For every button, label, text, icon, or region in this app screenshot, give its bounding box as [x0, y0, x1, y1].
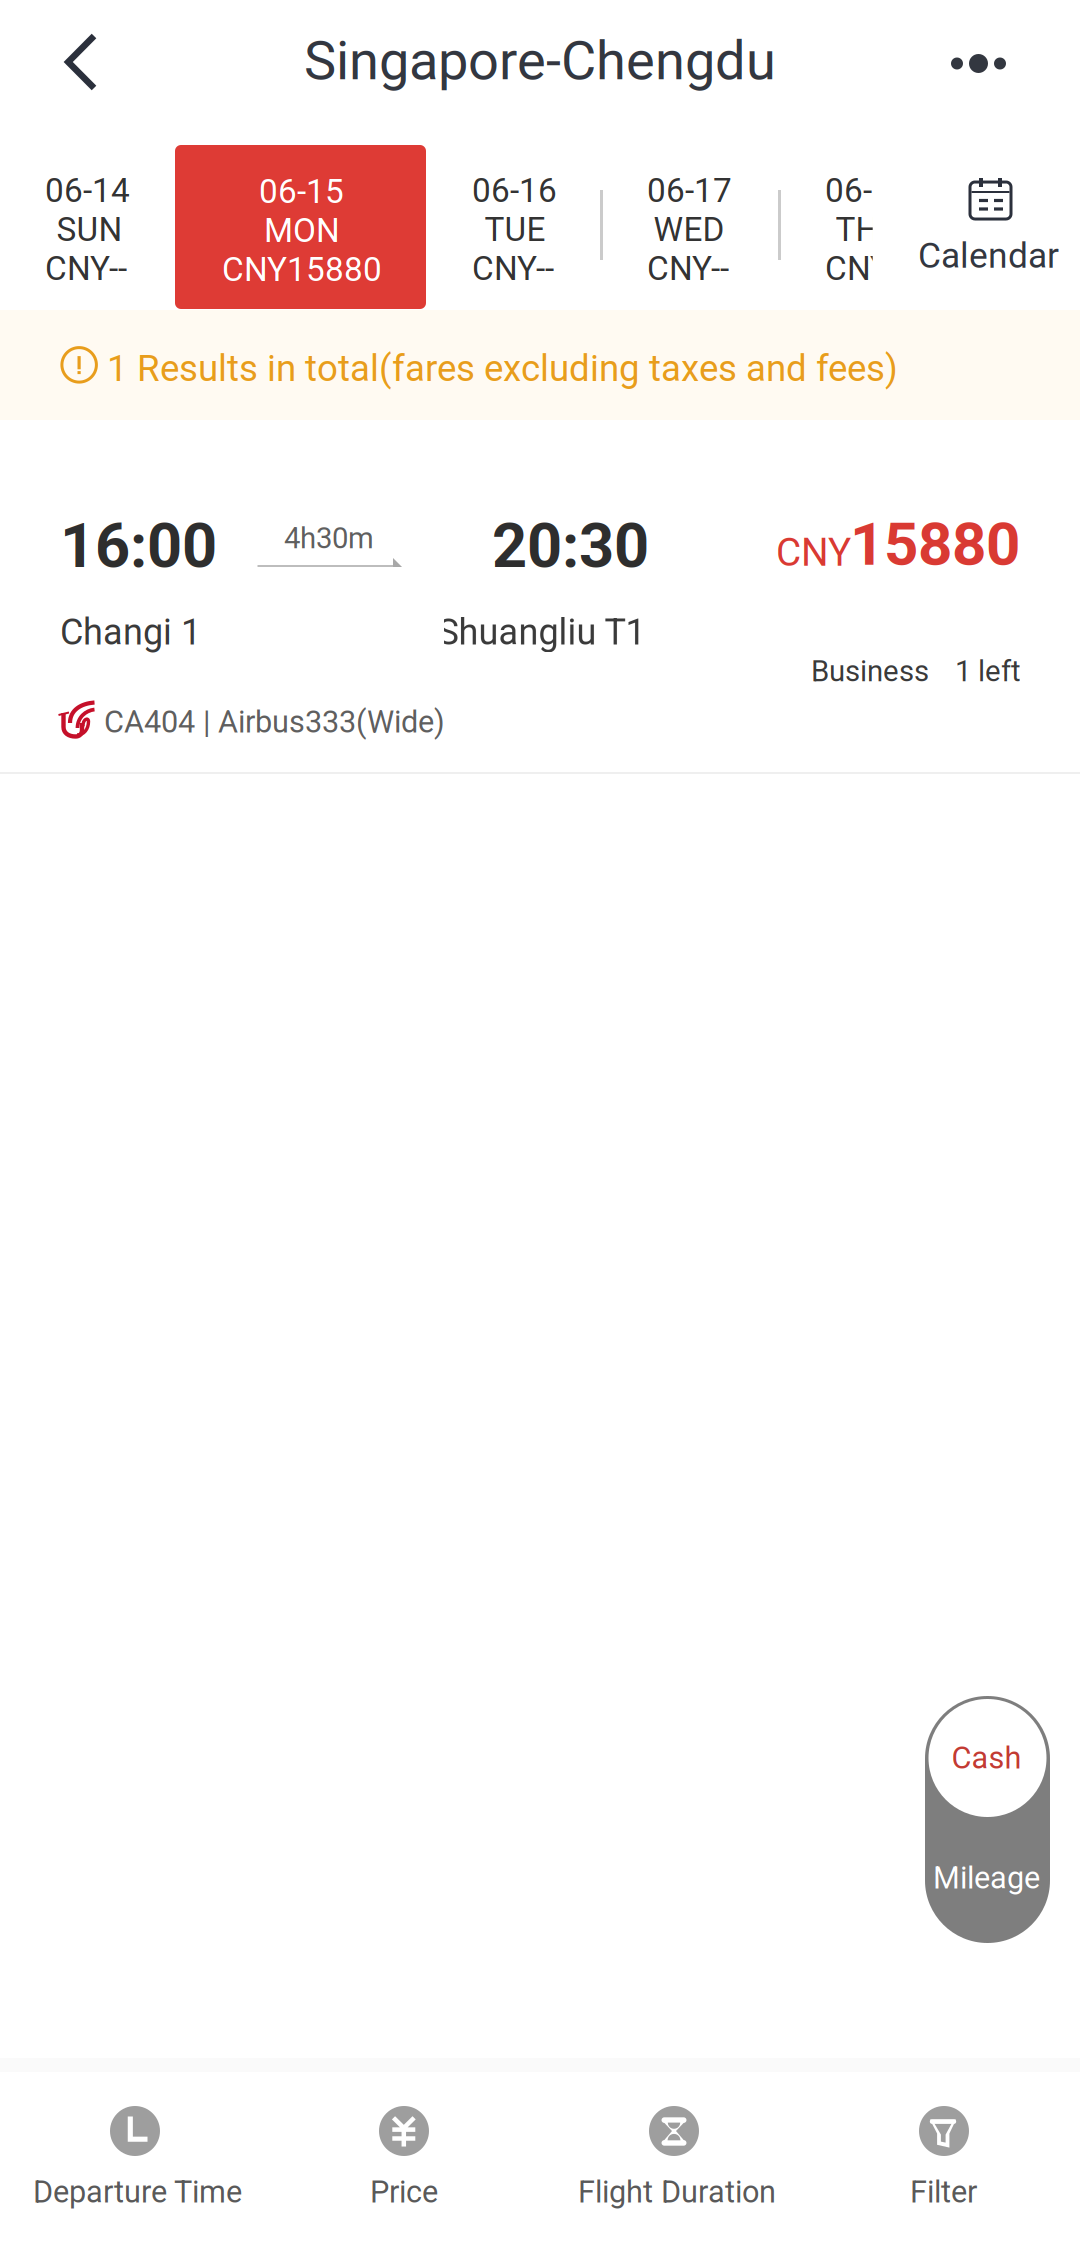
staticText: Singapore-Chengdu — [304, 29, 776, 92]
staticText: 1 Results in total(fares excluding taxes… — [107, 347, 898, 390]
staticText: CNY — [776, 530, 851, 575]
staticText: 06-17 — [647, 171, 732, 210]
button[interactable]: Flight Duration — [539, 2072, 809, 2243]
button[interactable]: Departure Time — [0, 2072, 270, 2243]
staticText: Calendar — [918, 235, 1059, 276]
staticText: 15880 — [850, 509, 1020, 579]
button[interactable]: 06-16 — [427, 144, 602, 309]
button[interactable] — [0, 420, 1080, 773]
button[interactable]: 06-15 — [175, 145, 426, 309]
staticText: 06-16 — [472, 171, 557, 210]
staticText: TUE — [484, 210, 545, 249]
staticText: MON — [264, 211, 340, 250]
button[interactable]: More options — [920, 0, 1050, 124]
staticText: Mileage — [933, 1860, 1040, 1896]
staticText: 06-15 — [259, 172, 344, 211]
staticText: 16:00 — [60, 510, 217, 582]
button[interactable]: Back — [0, 0, 118, 124]
staticText: Changi 1 — [60, 611, 201, 653]
staticText: Price — [370, 2174, 438, 2210]
button[interactable]: 06-17 — [602, 144, 777, 309]
staticText: Filter — [910, 2174, 977, 2210]
staticText: 06-18 — [825, 171, 910, 210]
staticText: Shuangliu T1 — [437, 611, 645, 653]
staticText: CNY-- — [825, 249, 907, 288]
staticText: Cash — [951, 1740, 1021, 1776]
staticText: CA404 | Airbus333(Wide) — [104, 704, 445, 740]
button[interactable]: Calendar — [899, 144, 1080, 309]
staticText: CNY-- — [647, 249, 729, 288]
staticText: THU — [835, 210, 901, 249]
staticText: 4h30m — [284, 521, 374, 555]
button[interactable]: Price — [269, 2072, 539, 2243]
staticText: Departure Time — [33, 2174, 242, 2210]
staticText: CNY15880 — [222, 250, 382, 289]
staticText: Business — [811, 654, 929, 688]
staticText: SUN — [56, 210, 122, 249]
staticText: 1 left — [955, 654, 1021, 688]
staticText: WED — [653, 210, 724, 249]
staticText: CNY-- — [45, 249, 127, 288]
staticText: CNY-- — [472, 249, 554, 288]
staticText: 06-14 — [45, 171, 130, 210]
button[interactable]: 06-18 — [777, 144, 873, 309]
staticText: 20:30 — [492, 510, 649, 582]
button[interactable]: Filter — [809, 2072, 1079, 2243]
button[interactable]: Cash — [925, 1696, 1050, 1943]
button[interactable]: 06-14 — [0, 144, 175, 309]
staticText: Flight Duration — [578, 2174, 776, 2210]
